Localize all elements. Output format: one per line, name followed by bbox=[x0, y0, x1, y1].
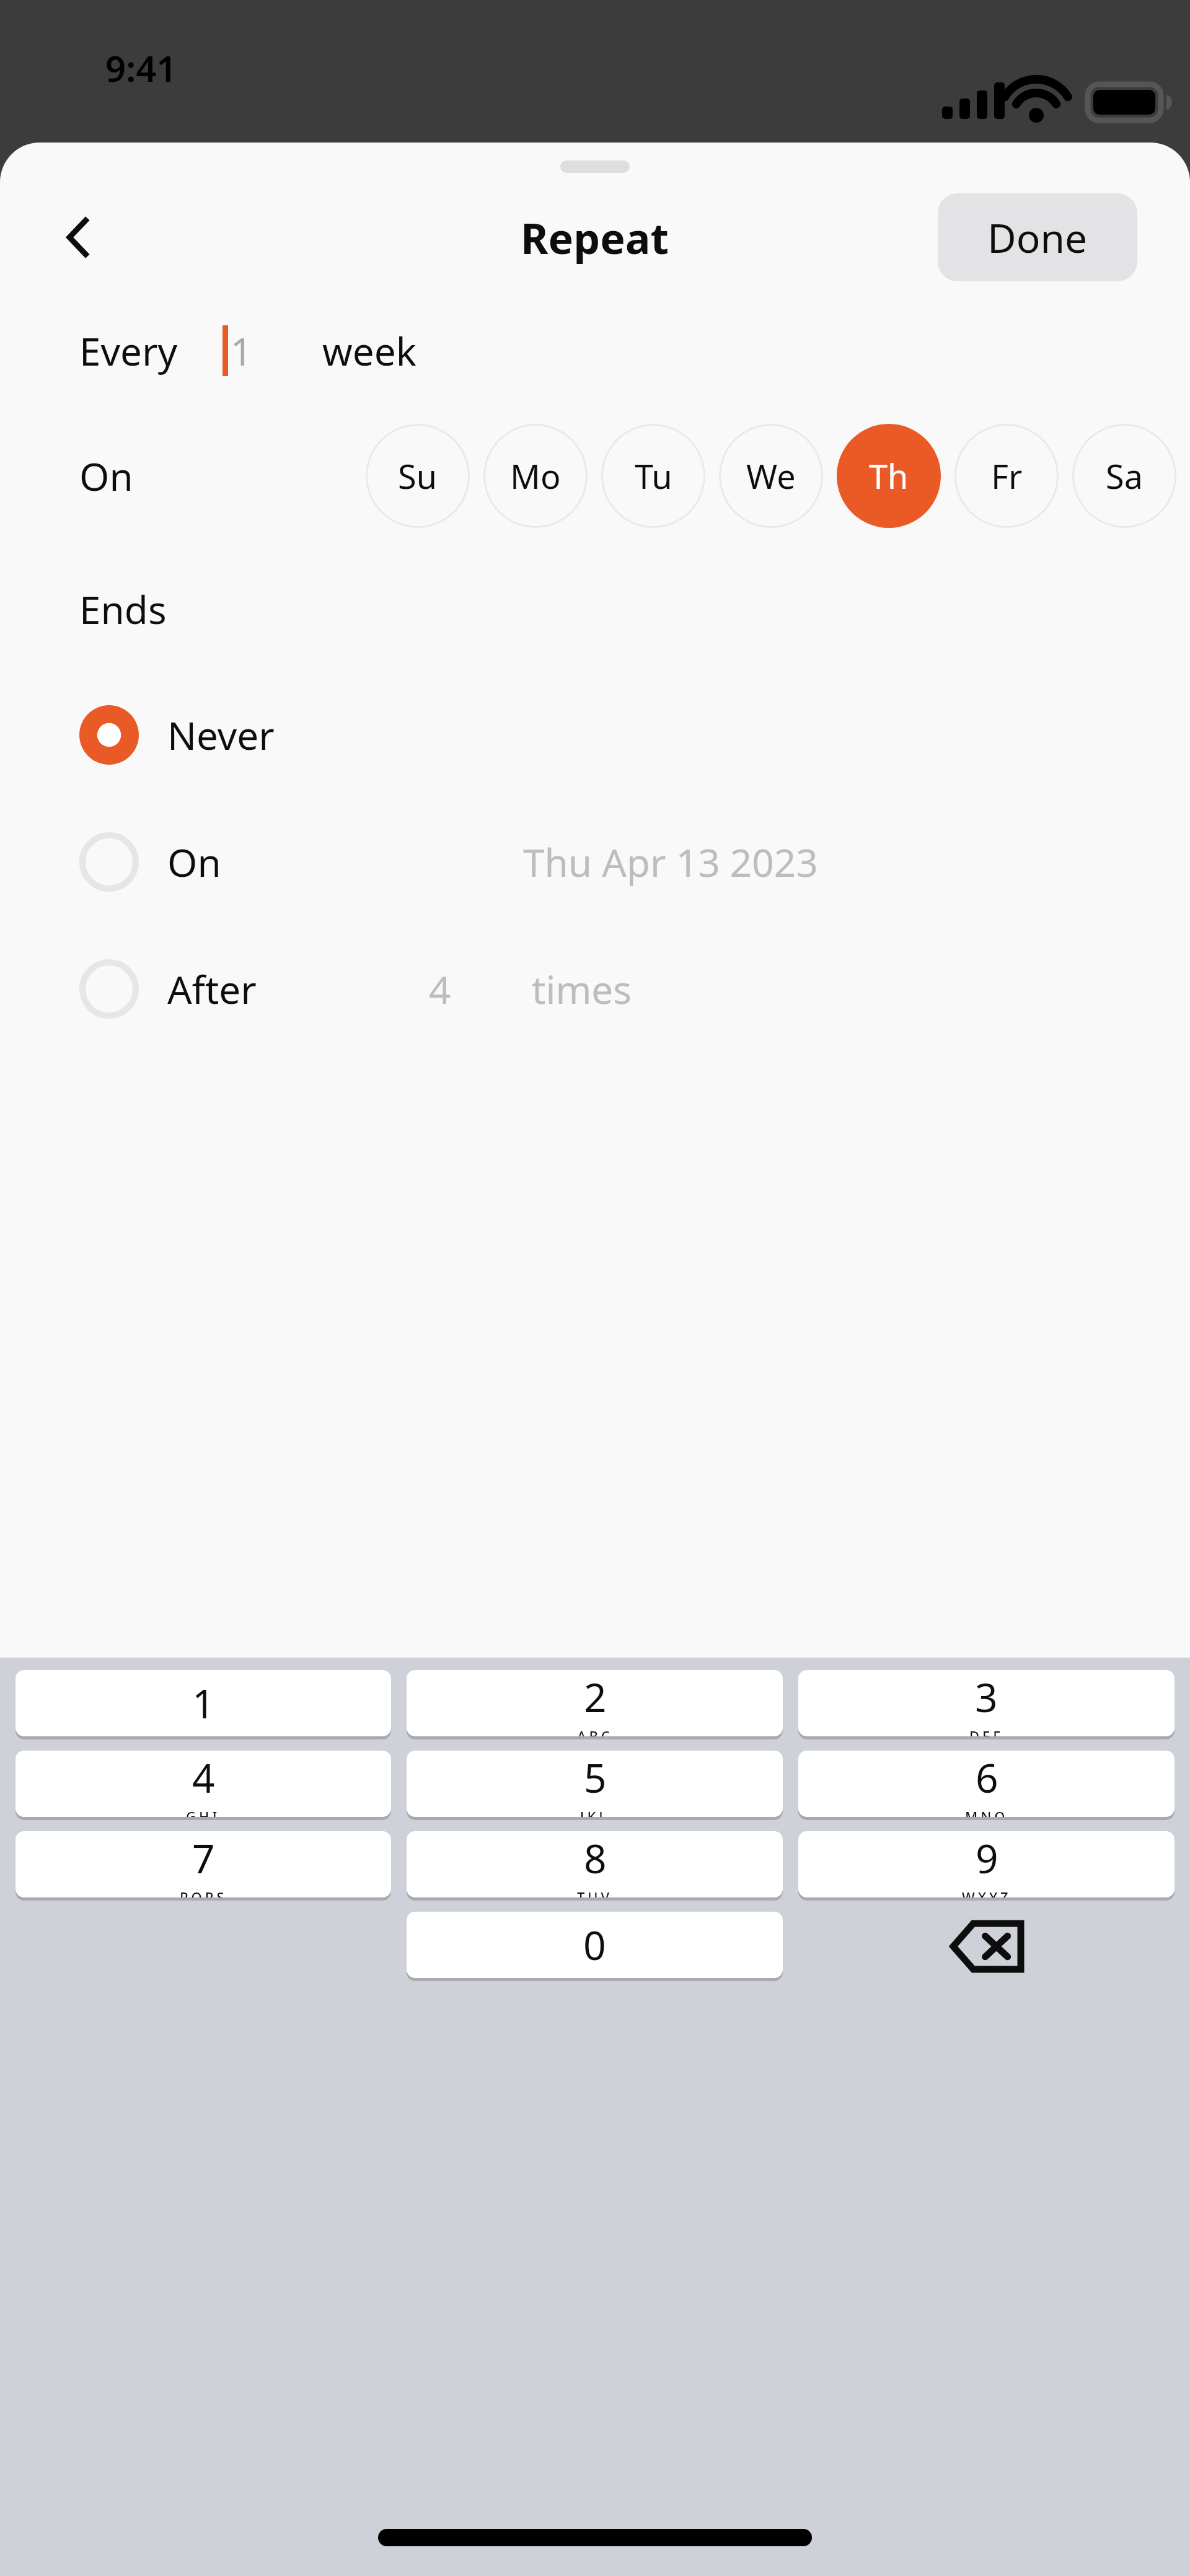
button[interactable]: 3 bbox=[798, 1670, 1175, 1736]
staticText: GHI bbox=[186, 1807, 221, 1817]
staticText: 4 bbox=[192, 1751, 215, 1805]
button[interactable]: 6 bbox=[798, 1751, 1175, 1817]
staticText: 9:41 bbox=[105, 43, 177, 92]
staticText: 1 bbox=[231, 325, 253, 377]
staticText: Mo bbox=[510, 453, 561, 499]
staticText: Every bbox=[79, 325, 178, 377]
staticText: MNO bbox=[965, 1807, 1008, 1817]
button[interactable]: Mo bbox=[483, 424, 588, 528]
button[interactable]: Back bbox=[38, 197, 119, 278]
staticText: Fr bbox=[991, 453, 1023, 499]
button[interactable]: Never bbox=[0, 671, 1190, 798]
button[interactable]: We bbox=[719, 424, 823, 528]
staticText: Never bbox=[167, 709, 275, 761]
button[interactable]: 1 bbox=[15, 1670, 391, 1736]
staticText: 9 bbox=[976, 1831, 998, 1885]
staticText: 3 bbox=[975, 1670, 998, 1724]
staticText: JKL bbox=[580, 1807, 610, 1817]
staticText: week bbox=[322, 325, 416, 377]
staticText: We bbox=[746, 453, 796, 499]
button[interactable]: 7 bbox=[15, 1831, 391, 1897]
staticText: Done bbox=[987, 211, 1088, 265]
button[interactable]: Sa bbox=[1072, 424, 1176, 528]
button[interactable]: 5 bbox=[407, 1751, 783, 1817]
button[interactable]: 0 bbox=[407, 1912, 783, 1978]
staticText: 7 bbox=[192, 1831, 215, 1885]
button[interactable]: Done bbox=[938, 193, 1137, 281]
staticText: Sa bbox=[1106, 453, 1143, 499]
button[interactable]: Backspace bbox=[798, 1912, 1175, 1981]
button[interactable]: Fr bbox=[954, 424, 1059, 528]
staticText: TUV bbox=[577, 1888, 613, 1897]
button[interactable]: 2 bbox=[407, 1670, 783, 1736]
button[interactable]: On bbox=[0, 798, 1190, 925]
staticText: 6 bbox=[976, 1751, 998, 1805]
staticText: 2 bbox=[584, 1670, 607, 1724]
staticText: After bbox=[167, 963, 257, 1015]
button[interactable]: Th bbox=[837, 424, 941, 528]
staticText: Th bbox=[869, 453, 909, 499]
staticText: Su bbox=[398, 453, 438, 499]
staticText: On bbox=[167, 836, 221, 888]
button[interactable]: 8 bbox=[407, 1831, 783, 1897]
staticText: Tu bbox=[635, 453, 672, 499]
button[interactable]: Su bbox=[366, 424, 470, 528]
staticText: 0 bbox=[583, 1918, 606, 1972]
button[interactable]: After bbox=[0, 925, 1190, 1052]
staticText: 4 bbox=[429, 963, 451, 1015]
staticText: On bbox=[79, 450, 133, 502]
staticText: Ends bbox=[79, 583, 167, 635]
staticText: DEF bbox=[969, 1726, 1003, 1736]
button[interactable]: 9 bbox=[798, 1831, 1175, 1897]
staticText: PQRS bbox=[180, 1888, 227, 1897]
staticText: WXYZ bbox=[962, 1888, 1011, 1897]
staticText: 1 bbox=[192, 1676, 215, 1730]
staticText: Thu Apr 13 2023 bbox=[523, 836, 818, 888]
staticText: Repeat bbox=[521, 209, 669, 266]
staticText: times bbox=[532, 963, 632, 1015]
button[interactable]: 4 bbox=[15, 1751, 391, 1817]
staticText: 8 bbox=[584, 1831, 607, 1885]
button[interactable]: Tu bbox=[601, 424, 705, 528]
staticText: ABC bbox=[577, 1726, 613, 1736]
staticText: 5 bbox=[584, 1751, 607, 1805]
